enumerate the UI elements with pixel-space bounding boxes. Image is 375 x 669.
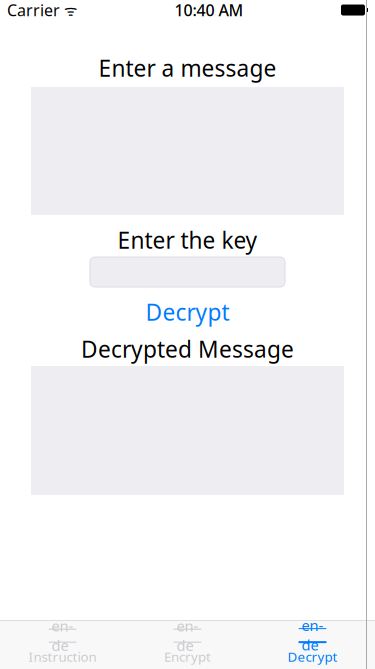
staticText: Encrypt xyxy=(164,648,211,665)
staticText: Instruction xyxy=(28,648,96,665)
button[interactable]: ende xyxy=(125,622,250,668)
staticText: Enter a message xyxy=(98,53,276,83)
staticText: Decrypt xyxy=(145,297,229,327)
button[interactable]: ende xyxy=(0,622,125,668)
staticText: ende xyxy=(301,616,323,655)
button[interactable]: ende xyxy=(250,622,375,668)
staticText: ende xyxy=(176,616,198,655)
staticText: Enter the key xyxy=(117,225,257,255)
staticText: Decrypted Message xyxy=(81,334,294,364)
staticText: Decrypt xyxy=(287,648,337,665)
staticText: ᯤ xyxy=(60,0,77,20)
staticText: Carrier xyxy=(7,0,60,21)
staticText: 10:40 AM xyxy=(174,0,243,21)
staticText: ende xyxy=(51,616,73,655)
button[interactable]: Decrypt xyxy=(135,301,239,323)
